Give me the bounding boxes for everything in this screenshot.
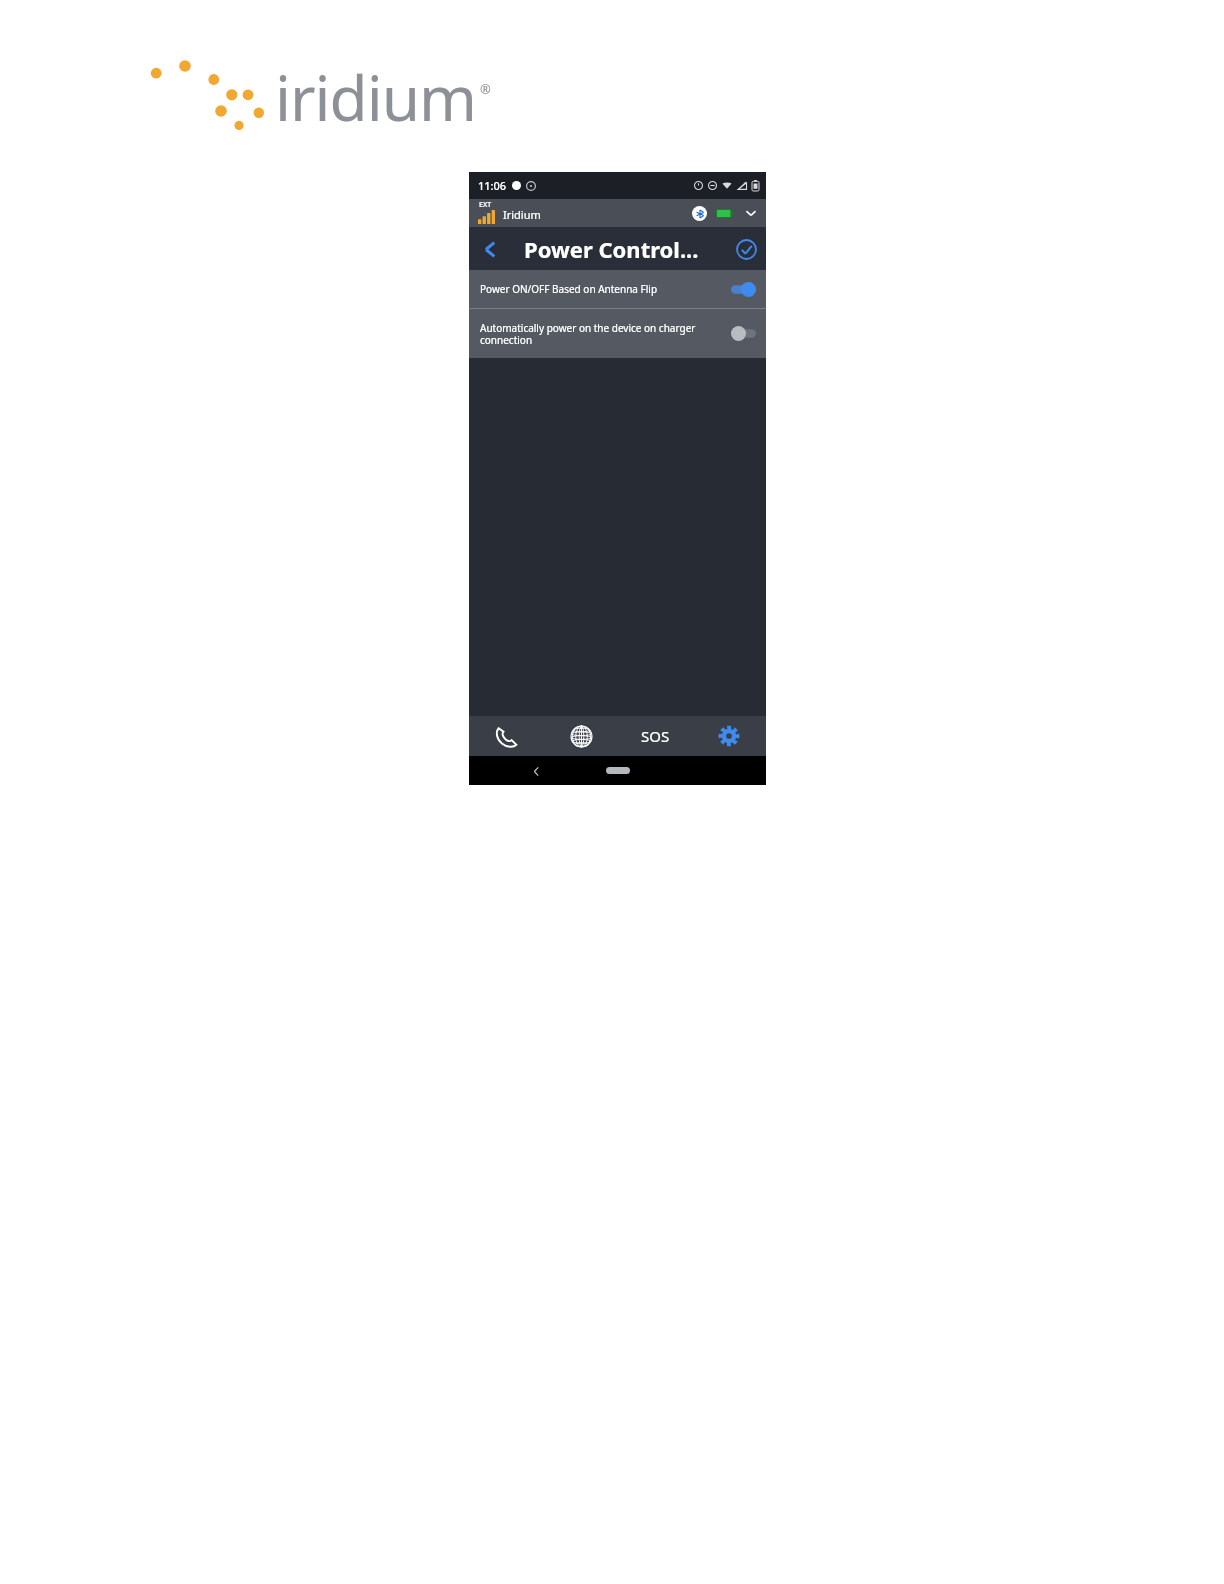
button[interactable]: Back [475,234,505,264]
button[interactable]: Network [544,716,618,756]
staticText: 11:06 [478,178,507,193]
staticText: EXT [479,200,492,210]
button[interactable]: Home [606,767,630,774]
staticText: Power Control... [524,234,699,264]
button[interactable]: SOS [618,716,692,756]
button[interactable]: Automatically power on the device on cha… [469,309,766,358]
button[interactable]: Confirm [732,235,760,263]
staticText: iridium [275,55,477,139]
button[interactable]: Toggle off [731,326,756,341]
staticText: Automatically power on the device on cha… [480,321,723,347]
button[interactable]: Expand [743,205,759,221]
button[interactable]: Bluetooth [692,206,707,221]
staticText: Iridium [503,207,541,222]
button[interactable]: Power ON/OFF Based on Antenna Flip [469,270,766,308]
staticText: Power ON/OFF Based on Antenna Flip [480,282,723,296]
staticText: SOS [641,726,670,746]
button[interactable]: Back [525,760,547,782]
staticText: ® [480,80,491,98]
button[interactable]: Toggle on [731,282,756,297]
button[interactable]: Settings [692,716,766,756]
button[interactable]: Call [469,716,544,756]
